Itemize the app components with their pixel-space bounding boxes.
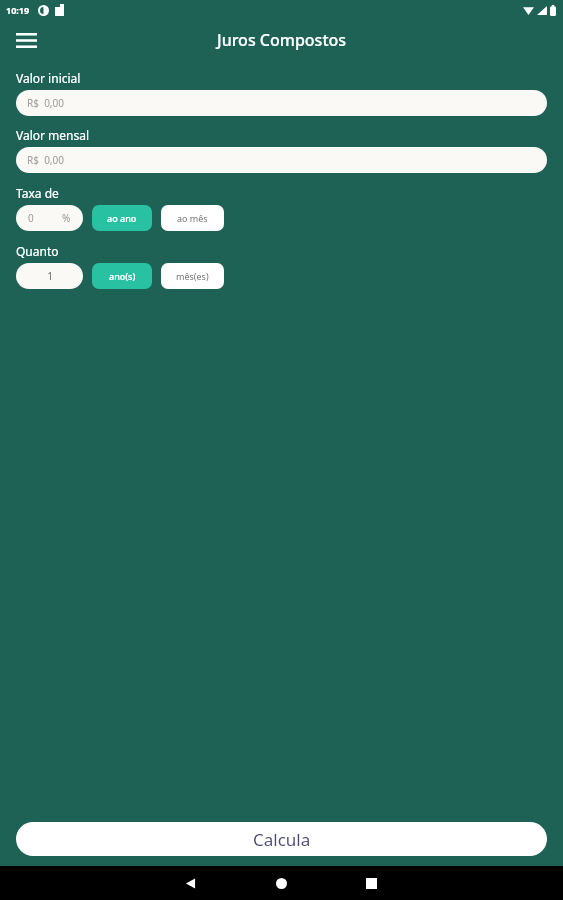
staticText: ano(s) <box>109 270 136 282</box>
staticText: 10:19 <box>6 4 30 16</box>
staticText: mês(es) <box>176 270 209 282</box>
staticText: Quanto <box>16 243 59 259</box>
staticText: 1 <box>47 269 53 283</box>
staticText: Valor inicial <box>16 70 81 86</box>
staticText: Juros Compostos <box>217 29 347 51</box>
staticText: ao mês <box>177 212 208 224</box>
staticText: ao ano <box>107 212 137 224</box>
staticText: 0 <box>28 211 34 225</box>
button[interactable]: ao ano <box>92 205 152 231</box>
staticText: R$ 0,00 <box>27 153 64 167</box>
button[interactable]: 1 <box>16 263 83 289</box>
staticText: Valor mensal <box>16 127 90 143</box>
button[interactable]: ao mês <box>161 205 224 231</box>
button[interactable]: R$ 0,00 <box>16 147 547 173</box>
button[interactable]: R$ 0,00 <box>16 90 547 116</box>
staticText: R$ 0,00 <box>27 96 64 110</box>
staticText: % <box>62 211 71 225</box>
staticText: Taxa de <box>16 185 59 201</box>
button[interactable]: Menu <box>8 22 44 58</box>
button[interactable]: Calcula <box>16 822 547 856</box>
button[interactable]: mês(es) <box>161 263 224 289</box>
button[interactable]: ano(s) <box>92 263 152 289</box>
staticText: Calcula <box>253 828 311 851</box>
button[interactable]: 0 <box>16 205 83 231</box>
